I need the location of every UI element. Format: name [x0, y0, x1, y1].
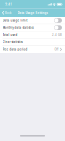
button[interactable]: Back — [1, 10, 12, 16]
button[interactable]: Free data period — [0, 46, 65, 53]
button[interactable]: Clear statistics — [0, 39, 65, 46]
staticText: Back — [5, 11, 11, 15]
staticText: Data usage limit — [2, 19, 27, 22]
staticText: Total used — [2, 33, 17, 37]
staticText: Monthly data statistics — [2, 26, 33, 29]
button[interactable]: Monthly data statistics — [0, 24, 65, 31]
button[interactable]: Total used — [0, 31, 65, 39]
staticText: 2.4 GB — [52, 33, 62, 37]
staticText: Off — [55, 48, 59, 51]
button[interactable]: Data usage limit — [0, 17, 65, 24]
staticText: 9:41 — [5, 2, 12, 6]
staticText: Clear statistics — [2, 40, 22, 44]
staticText: Free data period — [2, 47, 27, 51]
staticText: Data Usage Settings — [17, 11, 47, 15]
